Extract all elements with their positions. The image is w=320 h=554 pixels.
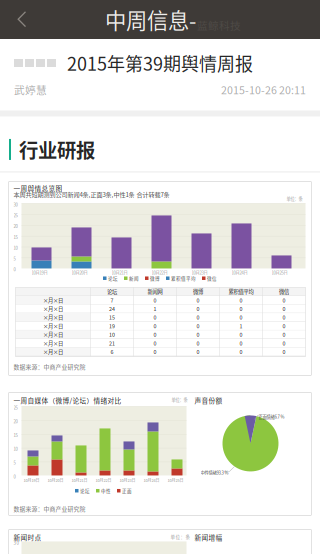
- staticText: 0: [153, 348, 156, 355]
- staticText: 10月21日: [71, 477, 87, 483]
- staticText: 0: [196, 348, 199, 355]
- staticText: 21: [109, 339, 115, 347]
- staticText: 0: [153, 296, 156, 304]
- staticText: 武婷慧: [14, 82, 47, 97]
- staticText: 2015年第39期舆情周报: [67, 50, 253, 76]
- staticText: 单位：条: [171, 396, 187, 403]
- staticText: 论坛: [107, 288, 117, 295]
- staticText: 10月24日: [143, 477, 159, 483]
- staticText: 一周舆情总览图: [13, 183, 62, 193]
- staticText: 5: [13, 256, 15, 262]
- staticText: 正面: [122, 487, 132, 494]
- staticText: 15: [13, 432, 17, 438]
- staticText: 10: [109, 331, 115, 338]
- staticText: 5: [13, 460, 15, 466]
- staticText: ×月×日: [43, 305, 63, 312]
- staticText: 声音份额: [194, 395, 222, 405]
- staticText: 微信: [279, 288, 289, 295]
- staticText: 10月23日: [119, 477, 135, 483]
- staticText: 行业研报: [19, 135, 95, 163]
- staticText: 10月19日: [23, 477, 39, 483]
- staticText: 数据来源：中商产业研究院: [13, 362, 85, 371]
- staticText: 0: [196, 313, 199, 321]
- staticText: ×月×日: [43, 348, 63, 355]
- staticText: 单位：条: [286, 195, 302, 202]
- staticText: 20: [13, 223, 17, 229]
- staticText: 微博: [193, 288, 203, 295]
- staticText: 0: [13, 473, 15, 480]
- staticText: 0: [282, 331, 285, 338]
- staticText: 10月24日: [231, 269, 247, 276]
- staticText: 10月19日: [31, 269, 47, 276]
- staticText: 10月25日: [167, 477, 183, 483]
- staticText: 论坛: [80, 487, 90, 494]
- staticText: 累积值平均: [228, 288, 253, 295]
- staticText: 本周共短期测到公司新闻4条,正面3条,中性1条 合计转载7条: [13, 190, 169, 199]
- staticText: 微博: [150, 275, 160, 281]
- staticText: 新闻网: [147, 288, 162, 295]
- staticText: 0: [196, 339, 199, 347]
- staticText: 25: [13, 212, 17, 218]
- staticText: 数据来源：中商产业研究院: [13, 504, 85, 513]
- staticText: 0: [239, 305, 242, 312]
- staticText: ×月×日: [43, 339, 63, 347]
- staticText: 一周自媒体（微博/论坛）情绪对比: [13, 395, 121, 405]
- staticText: 0: [153, 331, 156, 338]
- staticText: 20: [13, 418, 17, 424]
- staticText: 0: [196, 331, 199, 338]
- staticText: 10: [13, 245, 17, 251]
- staticText: 单位：条: [170, 533, 190, 540]
- staticText: 0: [282, 322, 285, 330]
- staticText: 正面情绪6.7 %: [258, 413, 284, 420]
- staticText: ×月×日: [43, 313, 63, 321]
- staticText: 新闻: [129, 275, 139, 281]
- staticText: 新闻增幅: [194, 532, 222, 542]
- staticText: 0: [196, 322, 199, 330]
- staticText: 0: [153, 339, 156, 347]
- staticText: 中性: [101, 487, 111, 494]
- staticText: 0: [153, 313, 156, 321]
- staticText: 19: [109, 322, 115, 330]
- staticText: 0: [239, 331, 242, 338]
- staticText: ×月×日: [43, 331, 63, 338]
- staticText: 微信: [207, 275, 217, 281]
- staticText: 1: [239, 322, 242, 330]
- staticText: 30: [13, 201, 17, 208]
- staticText: 10月20日: [47, 477, 63, 483]
- staticText: 0: [282, 348, 285, 355]
- staticText: 0: [239, 313, 242, 321]
- staticText: 论坛: [108, 275, 118, 281]
- staticText: 15: [109, 313, 115, 321]
- staticText: 2015-10-26 20:11: [221, 82, 306, 97]
- button[interactable]: Back: [0, 0, 44, 39]
- staticText: 0: [239, 339, 242, 347]
- staticText: 0: [13, 266, 15, 273]
- staticText: 10月21日: [111, 269, 127, 276]
- staticText: 10: [13, 446, 17, 452]
- staticText: ×月×日: [43, 322, 63, 330]
- staticText: 0: [196, 296, 199, 304]
- staticText: 10月23日: [191, 269, 207, 276]
- staticText: 24: [109, 305, 115, 312]
- staticText: 6: [110, 348, 113, 355]
- staticText: 25: [13, 404, 17, 411]
- staticText: 0: [239, 296, 242, 304]
- staticText: 0: [282, 339, 285, 347]
- staticText: 0: [196, 305, 199, 312]
- staticText: 中性情绪93.3 %: [200, 469, 228, 476]
- staticText: 0: [282, 305, 285, 312]
- staticText: 0: [282, 313, 285, 321]
- staticText: 0: [153, 322, 156, 330]
- staticText: 7: [110, 296, 113, 304]
- staticText: 蓝鲸科技: [197, 17, 241, 33]
- staticText: 1: [153, 305, 156, 312]
- staticText: 累积值平均: [171, 275, 196, 281]
- staticText: 10月25日: [271, 269, 287, 276]
- staticText: ×月×日: [43, 296, 63, 304]
- staticText: 15: [13, 234, 17, 240]
- staticText: 30: [13, 539, 19, 546]
- staticText: 0: [282, 296, 285, 304]
- staticText: 10月20日: [71, 269, 87, 276]
- staticText: 0: [239, 348, 242, 355]
- staticText: 新闻时点: [13, 532, 41, 542]
